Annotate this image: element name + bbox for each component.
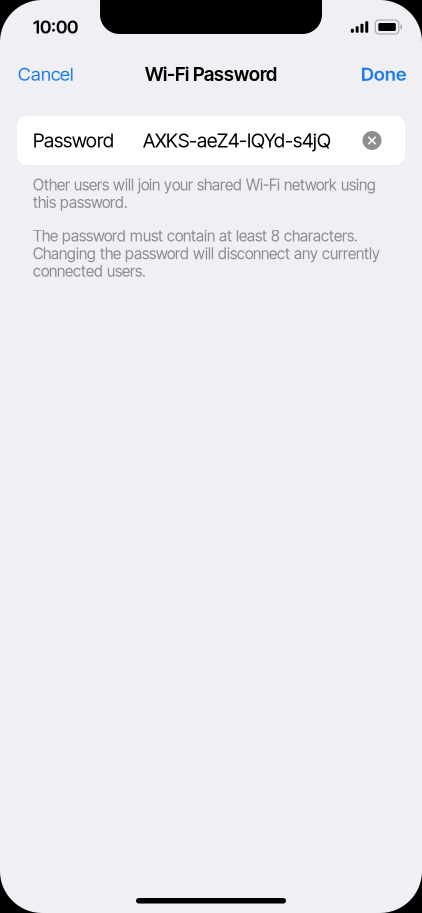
staticText: Wi-Fi Password <box>145 62 277 85</box>
staticText: Other users will join your shared Wi-Fi … <box>33 175 376 194</box>
staticText: this password. <box>33 193 128 212</box>
button[interactable]: Password <box>17 116 405 165</box>
button[interactable]: Done <box>359 53 408 95</box>
staticText: Done <box>361 63 406 85</box>
staticText: AXKS-aeZ4-IQYd-s4jQ <box>143 129 331 152</box>
staticText: The password must contain at least 8 cha… <box>33 227 358 245</box>
staticText: Changing the password will disconnect an… <box>33 244 380 263</box>
staticText: Password <box>33 129 114 152</box>
button[interactable]: Cancel <box>16 53 76 95</box>
staticText: connected users. <box>33 262 146 280</box>
staticText: Cancel <box>18 63 74 85</box>
staticText: 10:00 <box>33 16 78 38</box>
button[interactable]: Clear text <box>349 117 395 164</box>
